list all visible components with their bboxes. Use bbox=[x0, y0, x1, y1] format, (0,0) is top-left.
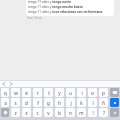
staticText: d bbox=[25, 100, 28, 106]
button[interactable]: j bbox=[66, 98, 75, 107]
staticText: p bbox=[102, 90, 105, 96]
staticText: o bbox=[91, 90, 94, 96]
button[interactable]: Previous suggestions bbox=[1, 81, 7, 87]
staticText: k bbox=[80, 100, 83, 106]
staticText: y bbox=[58, 90, 61, 96]
staticText: a bbox=[4, 100, 7, 106]
staticText: ? bbox=[103, 110, 105, 116]
button[interactable]: s bbox=[11, 98, 20, 107]
button[interactable]: o bbox=[88, 88, 97, 97]
button[interactable]: h bbox=[55, 98, 64, 107]
staticText: g bbox=[47, 100, 50, 106]
button[interactable]: Send bbox=[110, 98, 119, 107]
button[interactable]: p bbox=[99, 88, 108, 97]
staticText: h bbox=[58, 100, 61, 106]
staticText: b bbox=[58, 110, 61, 116]
staticText: c bbox=[36, 110, 39, 116]
staticText: m bbox=[79, 110, 84, 116]
staticText: t bbox=[48, 90, 50, 96]
button[interactable]: v bbox=[44, 108, 53, 117]
button[interactable]: More suggestions bbox=[8, 81, 14, 87]
staticText: q bbox=[4, 90, 7, 96]
button[interactable]: ! bbox=[88, 108, 97, 117]
staticText: e bbox=[25, 90, 28, 96]
button[interactable]: c bbox=[33, 108, 42, 117]
button[interactable]: m bbox=[77, 108, 86, 117]
staticText: j bbox=[70, 100, 72, 106]
button[interactable]: a bbox=[1, 98, 9, 107]
button[interactable]: ? bbox=[99, 108, 108, 117]
button[interactable]: n bbox=[66, 108, 75, 117]
staticText: v bbox=[47, 110, 50, 116]
button[interactable]: Symbols bbox=[110, 108, 119, 117]
button[interactable]: u bbox=[66, 88, 75, 97]
staticText: u bbox=[69, 90, 72, 96]
button[interactable]: e bbox=[22, 88, 31, 97]
staticText: l bbox=[92, 100, 94, 106]
staticText: f bbox=[37, 100, 39, 106]
button[interactable]: y bbox=[55, 88, 64, 97]
button[interactable]: w bbox=[11, 88, 20, 97]
button[interactable]: t bbox=[44, 88, 53, 97]
button[interactable]: l bbox=[88, 98, 97, 107]
staticText: w bbox=[14, 90, 18, 96]
staticText: s bbox=[14, 100, 17, 106]
button[interactable]: z bbox=[11, 108, 20, 117]
staticText: tengo 11 años y tengo mucho busto bbox=[28, 5, 83, 9]
button[interactable]: Shift bbox=[1, 108, 9, 117]
staticText: Hace 18 min bbox=[27, 16, 43, 20]
staticText: tengo 11 años y tengo novio bbox=[28, 0, 71, 4]
button[interactable]: x bbox=[22, 108, 31, 117]
button[interactable]: d bbox=[22, 98, 31, 107]
button[interactable]: r bbox=[33, 88, 42, 97]
button[interactable]: Backspace bbox=[110, 88, 119, 97]
staticText: r bbox=[37, 90, 39, 96]
staticText: ! bbox=[92, 110, 94, 116]
button[interactable]: ñ bbox=[99, 98, 108, 107]
staticText: tengo 11 años y tuve relaciones con mi h… bbox=[28, 10, 103, 14]
button[interactable]: k bbox=[77, 98, 86, 107]
button[interactable]: i bbox=[77, 88, 86, 97]
staticText: i bbox=[81, 90, 83, 96]
staticText: x bbox=[25, 110, 28, 116]
staticText: n bbox=[69, 110, 72, 116]
button[interactable]: g bbox=[44, 98, 53, 107]
button[interactable]: b bbox=[55, 108, 64, 117]
staticText: z bbox=[14, 110, 17, 116]
button[interactable]: tengo 11 años y tengo novio bbox=[26, 0, 114, 16]
button[interactable]: q bbox=[1, 88, 9, 97]
button[interactable]: f bbox=[33, 98, 42, 107]
staticText: ñ bbox=[102, 100, 105, 106]
